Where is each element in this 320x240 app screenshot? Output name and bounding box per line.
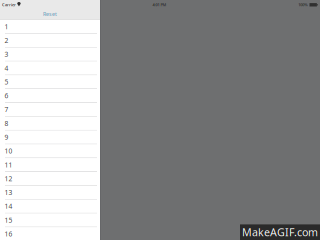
- staticText: 10: [5, 147, 13, 155]
- staticText: 14: [5, 202, 13, 211]
- staticText: 4:01 PM: [152, 2, 166, 7]
- staticText: 7: [5, 105, 9, 114]
- button[interactable]: 16: [0, 227, 100, 240]
- button[interactable]: 8: [0, 117, 100, 130]
- staticText: 6: [5, 91, 9, 100]
- button[interactable]: 11: [0, 158, 100, 172]
- button[interactable]: 4: [0, 61, 100, 75]
- staticText: 13: [5, 188, 13, 197]
- staticText: 1: [5, 22, 9, 31]
- button[interactable]: 7: [0, 103, 100, 117]
- staticText: 5: [5, 77, 9, 86]
- button[interactable]: 1: [0, 20, 100, 34]
- button[interactable]: 13: [0, 186, 100, 200]
- staticText: MakeAGIF.com: [242, 225, 318, 239]
- button[interactable]: 2: [0, 34, 100, 48]
- staticText: 8: [5, 119, 9, 128]
- staticText: 16: [5, 229, 13, 238]
- staticText: 15: [5, 216, 13, 225]
- button[interactable]: 5: [0, 75, 100, 89]
- button[interactable]: 6: [0, 89, 100, 103]
- button[interactable]: 15: [0, 213, 100, 227]
- button[interactable]: 9: [0, 131, 100, 144]
- button[interactable]: 10: [0, 144, 100, 158]
- staticText: 11: [5, 160, 13, 169]
- staticText: 4: [5, 64, 9, 72]
- staticText: 12: [5, 174, 13, 183]
- button[interactable]: 12: [0, 172, 100, 186]
- staticText: 3: [5, 50, 9, 59]
- staticText: Reset: [43, 10, 57, 18]
- staticText: 2: [5, 36, 9, 45]
- button[interactable]: 14: [0, 200, 100, 213]
- button[interactable]: 3: [0, 48, 100, 61]
- button[interactable]: Reset: [0, 9, 100, 19]
- staticText: Carrier: [2, 2, 16, 7]
- staticText: 100%: [298, 2, 308, 7]
- staticText: 9: [5, 133, 9, 142]
